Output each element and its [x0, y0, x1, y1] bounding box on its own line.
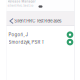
button[interactable]: Pogoń, J: [6, 31, 74, 38]
staticText: silent-hrc.test.io: [7, 4, 33, 7]
staticText: Smordzyk, PSR T: [8, 39, 44, 45]
staticText: Pogoń, J: [8, 32, 27, 37]
staticText: Silent HRC Test Releases: [14, 18, 61, 24]
button[interactable]: Back: [9, 18, 14, 23]
button[interactable]: Smordzyk, PSR T: [6, 38, 74, 46]
staticText: Release Manager: [7, 0, 35, 3]
